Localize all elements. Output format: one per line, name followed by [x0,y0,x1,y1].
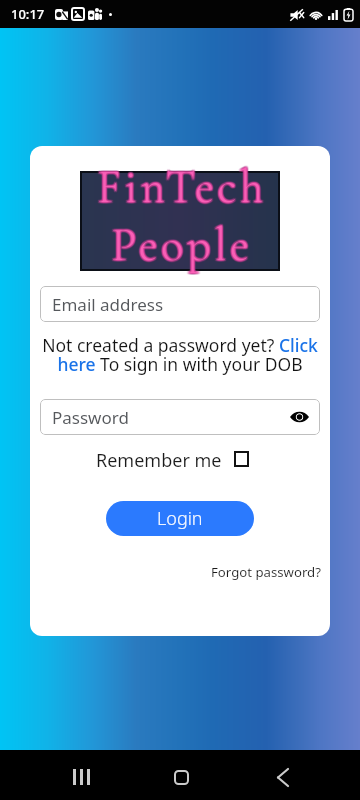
button[interactable]: Forgot password? [207,559,325,585]
staticText: People [109,217,251,274]
staticText: FinTech [95,159,265,216]
button[interactable]: Recent apps [61,757,101,797]
staticText: People [112,218,254,275]
staticText: FinTech [97,159,267,216]
staticText: FinTech [98,160,268,217]
button[interactable]: Login [106,501,254,536]
staticText: FinTech [96,160,266,217]
staticText: FinTech [98,157,268,214]
staticText: People [113,218,255,275]
staticText: FinTech [97,158,267,215]
staticText: People [111,217,253,274]
staticText: Password [52,406,129,429]
staticText: People [109,218,251,275]
button[interactable]: Remember me [92,442,253,475]
staticText: People [110,219,252,276]
staticText: People [111,218,253,275]
staticText: People [110,215,252,272]
staticText: FinTech [97,160,267,217]
staticText: People [111,218,253,275]
staticText: FinTech [96,159,266,216]
staticText: People [110,216,252,273]
staticText: Forgot password? [211,563,321,581]
staticText: FinTech [96,159,266,216]
staticText: FinTech [96,160,266,217]
staticText: People [110,216,252,273]
button[interactable]: Home [161,757,201,797]
staticText: FinTech [96,161,266,218]
staticText: Remember me [96,448,222,473]
staticText: Not created a password yet? Click here T… [41,333,319,376]
staticText: FinTech [97,157,267,214]
staticText: People [112,217,254,274]
staticText: People [112,216,254,273]
staticText: People [111,219,253,276]
staticText: People [110,217,252,274]
staticText: People [110,218,252,275]
staticText: 10:17 [11,5,45,23]
staticText: People [112,217,254,274]
staticText: People [112,219,254,276]
staticText: FinTech [97,160,267,217]
staticText: FinTech [99,159,269,216]
staticText: FinTech [98,158,268,215]
staticText: Email address [52,293,164,316]
button[interactable]: Back [263,757,303,797]
staticText: People [112,218,254,275]
staticText: FinTech [96,158,266,215]
button[interactable]: Email address [40,286,320,322]
staticText: People [113,216,255,273]
staticText: People [111,216,253,273]
staticText: People [112,215,254,272]
staticText: FinTech [98,159,268,216]
staticText: FinTech [98,161,268,218]
staticText: FinTech [99,160,269,217]
staticText: People [111,216,253,273]
staticText: People [113,217,255,274]
staticText: FinTech [96,158,266,215]
staticText: People [112,216,254,273]
staticText: FinTech [99,158,269,215]
staticText: People [111,215,253,272]
button[interactable]: Show password [286,404,312,430]
staticText: FinTech [95,158,265,215]
staticText: FinTech [97,161,267,218]
staticText: FinTech [96,157,266,214]
staticText: People [110,217,252,274]
staticText: Login [157,506,203,531]
staticText: FinTech [95,160,265,217]
button[interactable]: Password [40,399,320,435]
staticText: FinTech [97,158,267,215]
staticText: FinTech [98,159,268,216]
staticText: People [109,216,251,273]
staticText: FinTech [98,158,268,215]
staticText: FinTech [98,160,268,217]
staticText: People [110,218,252,275]
